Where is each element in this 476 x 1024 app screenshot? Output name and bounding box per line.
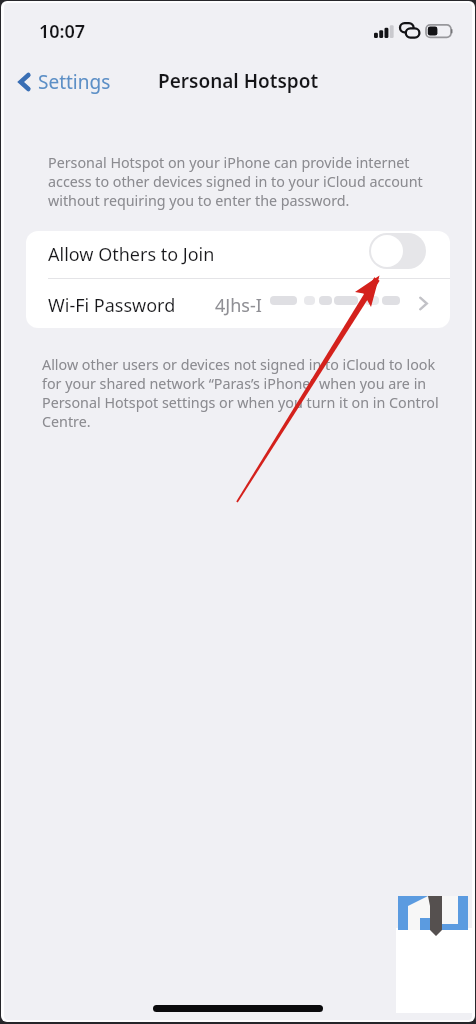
- button[interactable]: Allow Others to Join toggle: [369, 233, 426, 269]
- button[interactable]: Settings: [14, 66, 115, 98]
- staticText: Wi-Fi Password: [48, 293, 176, 318]
- staticText: Personal Hotspot on your iPhone can prov…: [48, 153, 446, 210]
- staticText: 10:07: [39, 19, 86, 44]
- staticText: Allow other users or devices not signed …: [42, 355, 440, 431]
- staticText: 4Jhs-I: [215, 293, 262, 318]
- staticText: Settings: [38, 69, 111, 95]
- button[interactable]: Wi-Fi Password: [26, 279, 450, 328]
- staticText: Allow Others to Join: [48, 242, 215, 267]
- button[interactable]: Allow Others to Join: [26, 231, 450, 278]
- staticText: Personal Hotspot: [158, 68, 319, 94]
